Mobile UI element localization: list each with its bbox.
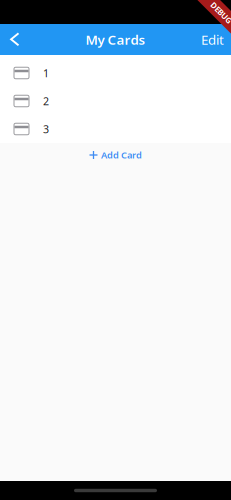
button[interactable]: Add Card [0, 143, 231, 167]
staticText: 3 [43, 122, 49, 136]
button[interactable]: Edit [201, 24, 231, 55]
staticText: DEBUG [208, 7, 231, 18]
button[interactable]: 1 [0, 59, 231, 87]
staticText: 2 [43, 94, 49, 108]
staticText: Add Card [101, 149, 142, 161]
button[interactable]: 3 [0, 115, 231, 143]
staticText: 1 [43, 66, 49, 80]
button[interactable]: Back [0, 24, 30, 55]
button[interactable]: 2 [0, 87, 231, 115]
staticText: My Cards [85, 31, 145, 48]
staticText: Edit [201, 31, 224, 48]
